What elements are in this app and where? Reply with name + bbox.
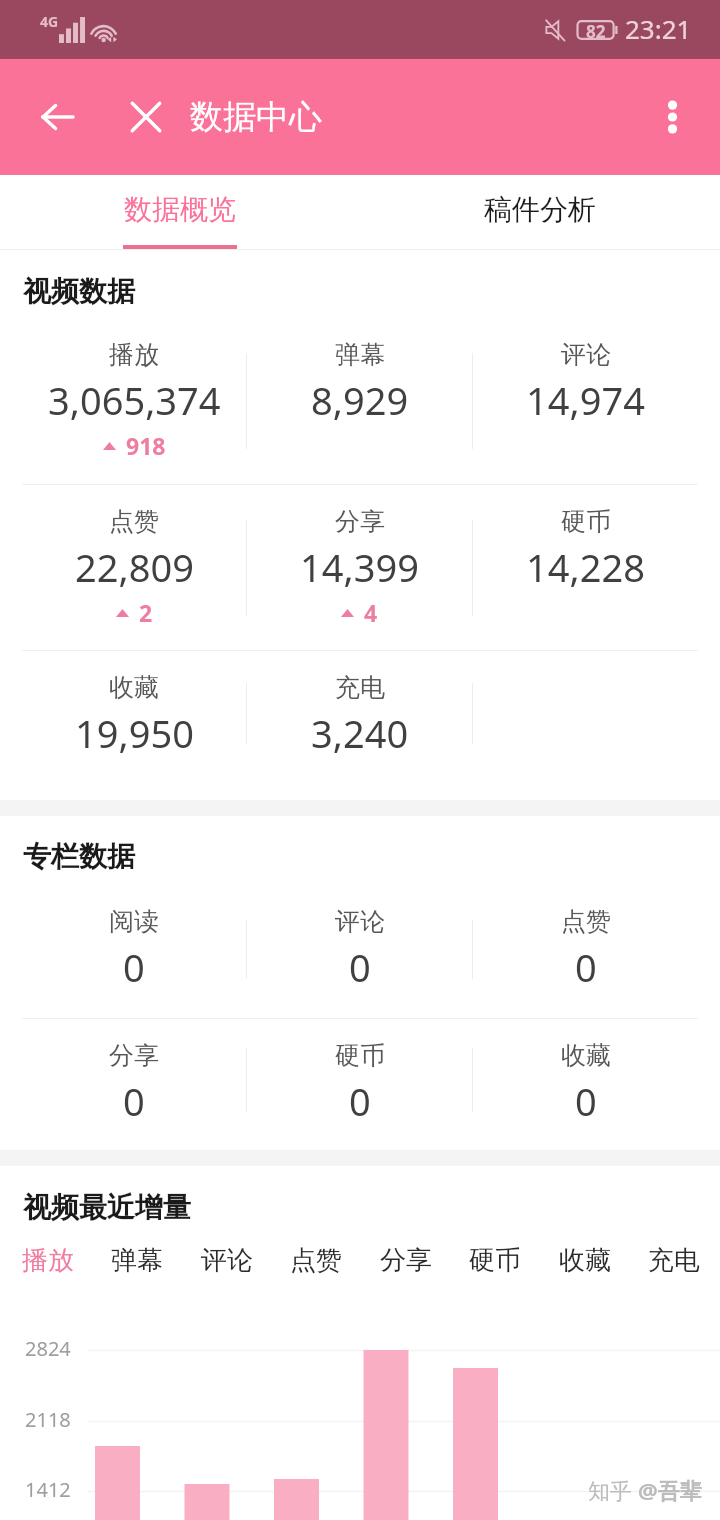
staticText: 0	[575, 1075, 597, 1127]
staticText: 评论	[335, 906, 385, 937]
staticText: 数据中心	[190, 96, 322, 138]
button[interactable]: 弹幕	[109, 1239, 165, 1282]
button[interactable]: Back	[26, 86, 88, 148]
staticText: 19,950	[75, 707, 194, 759]
staticText: 专栏数据	[23, 839, 135, 874]
staticText: 收藏	[561, 1040, 611, 1071]
staticText: 弹幕	[335, 339, 385, 370]
staticText: 数据概览	[124, 192, 236, 227]
staticText: 3,240	[311, 707, 409, 759]
staticText: 分享	[380, 1244, 432, 1277]
staticText: 2	[139, 597, 153, 628]
staticText: 0	[349, 1075, 371, 1127]
staticText: 22,809	[75, 541, 194, 593]
staticText: 82	[586, 20, 606, 40]
staticText: 评论	[201, 1244, 253, 1277]
staticText: 点赞	[561, 906, 611, 937]
staticText: 2824	[25, 1335, 71, 1362]
staticText: 3,065,374	[48, 374, 221, 426]
staticText: 阅读	[109, 906, 159, 937]
button[interactable]: 数据概览	[0, 175, 360, 249]
staticText: 0	[123, 1075, 145, 1127]
staticText: 弹幕	[111, 1244, 163, 1277]
staticText: 23:21	[625, 11, 692, 46]
button[interactable]: 硬币	[467, 1239, 523, 1282]
button[interactable]: More options	[644, 89, 700, 145]
staticText: 点赞	[290, 1244, 342, 1277]
staticText: 硬币	[561, 506, 611, 537]
button[interactable]: 分享	[247, 485, 472, 650]
button[interactable]: 评论	[247, 885, 472, 1018]
button[interactable]: 阅读	[22, 885, 246, 1018]
staticText: 0	[123, 941, 145, 993]
staticText: 知乎	[588, 1475, 638, 1505]
staticText: 硬币	[469, 1244, 521, 1277]
button[interactable]: 点赞	[22, 485, 246, 650]
staticText: 稿件分析	[484, 192, 596, 227]
staticText: 分享	[335, 506, 385, 537]
button[interactable]: 硬币	[247, 1019, 472, 1150]
button[interactable]: 分享	[378, 1239, 434, 1282]
staticText: 14,974	[526, 374, 645, 426]
staticText: 评论	[561, 339, 611, 370]
staticText: 4G	[40, 12, 59, 31]
button[interactable]: 点赞	[288, 1239, 344, 1282]
button[interactable]: 播放	[22, 318, 246, 484]
staticText: 918	[126, 430, 166, 461]
button[interactable]: 收藏	[557, 1239, 613, 1282]
staticText: 收藏	[559, 1244, 611, 1277]
button[interactable]: 弹幕	[247, 318, 472, 484]
staticText: 充电	[335, 672, 385, 703]
staticText: 硬币	[335, 1040, 385, 1071]
button[interactable]: 分享	[22, 1019, 246, 1150]
staticText: 2118	[25, 1406, 71, 1433]
staticText: 充电	[648, 1244, 700, 1277]
staticText: 视频数据	[23, 274, 135, 309]
staticText: 8,929	[311, 374, 409, 426]
button[interactable]: 收藏	[22, 651, 246, 800]
staticText: 点赞	[109, 506, 159, 537]
staticText: 视频最近增量	[23, 1190, 191, 1225]
staticText: 分享	[109, 1040, 159, 1071]
staticText: 4	[364, 597, 378, 628]
button[interactable]: 评论	[199, 1239, 255, 1282]
staticText: 播放	[109, 339, 159, 370]
staticText: @吾辈	[638, 1475, 702, 1505]
staticText: 收藏	[109, 672, 159, 703]
button[interactable]: 稿件分析	[360, 175, 720, 249]
staticText: 14,228	[526, 541, 645, 593]
button[interactable]: 点赞	[473, 885, 698, 1018]
staticText: 1412	[25, 1476, 71, 1503]
button[interactable]: 收藏	[473, 1019, 698, 1150]
button[interactable]: 评论	[473, 318, 698, 484]
staticText: 播放	[22, 1244, 74, 1277]
button[interactable]: 播放	[20, 1239, 76, 1282]
staticText: 14,399	[300, 541, 419, 593]
button[interactable]: 硬币	[473, 485, 698, 650]
button[interactable]: Close	[118, 89, 174, 145]
other: Silent mode	[545, 19, 568, 41]
staticText: 0	[349, 941, 371, 993]
staticText: 0	[575, 941, 597, 993]
button[interactable]: 充电	[247, 651, 472, 800]
button[interactable]: 充电	[646, 1239, 702, 1282]
